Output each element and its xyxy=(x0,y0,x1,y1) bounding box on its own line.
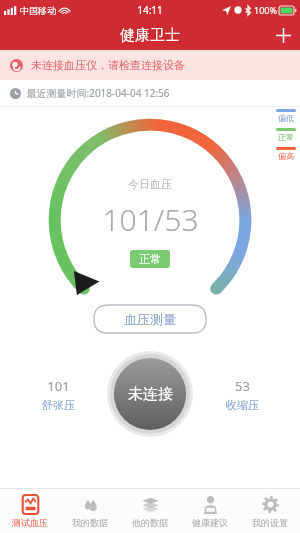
button[interactable]: 他的数据 xyxy=(120,489,180,533)
button[interactable]: 正常 xyxy=(130,250,170,268)
staticText: 未连接 xyxy=(128,385,173,404)
staticText: 健康卫士 xyxy=(120,26,180,45)
staticText: 今日血压 xyxy=(128,177,172,191)
staticText: 血压测量 xyxy=(124,311,176,327)
staticText: 101/53 xyxy=(102,199,199,240)
staticText: 偏高 xyxy=(278,151,294,161)
staticText: 我的设置 xyxy=(252,517,288,528)
staticText: 收缩压 xyxy=(226,398,259,412)
staticText: 14:11 xyxy=(137,3,163,17)
staticText: 舒张压 xyxy=(42,398,75,412)
staticText: 53 xyxy=(235,377,250,395)
button[interactable]: 未连接 xyxy=(107,351,193,437)
staticText: 中国移动 xyxy=(20,5,56,16)
button[interactable]: 测试血压 xyxy=(0,489,60,533)
button[interactable]: 健康建议 xyxy=(180,489,240,533)
button[interactable]: 血压测量 xyxy=(94,305,206,333)
staticText: 他的数据 xyxy=(132,517,168,528)
staticText: 正常 xyxy=(139,252,161,266)
staticText: 健康建议 xyxy=(192,517,228,528)
staticText: 正常 xyxy=(278,132,294,142)
button[interactable]: 我的数据 xyxy=(60,489,120,533)
button[interactable]: Add xyxy=(266,20,300,50)
staticText: 最近测量时间:2018-04-04 12:56 xyxy=(26,86,170,100)
staticText: 未连接血压仪，请检查连接设备 xyxy=(31,58,185,72)
staticText: 测试血压 xyxy=(12,517,48,528)
staticText: 100% xyxy=(254,4,277,16)
button[interactable]: 我的设置 xyxy=(240,489,300,533)
staticText: 偏低 xyxy=(278,113,294,123)
staticText: 101 xyxy=(47,377,70,395)
button[interactable]: 未连接血压仪，请检查连接设备 xyxy=(0,50,300,80)
staticText: 我的数据 xyxy=(72,517,108,528)
